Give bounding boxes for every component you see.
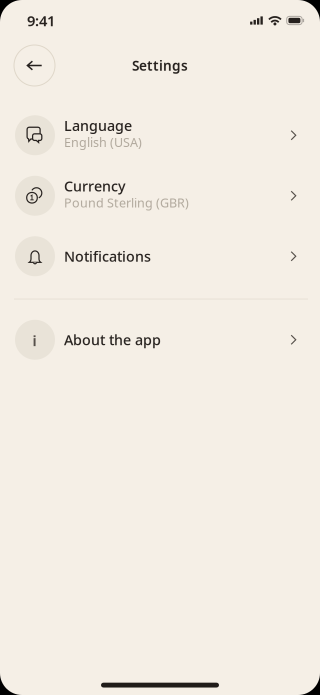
staticText: Language xyxy=(64,116,132,135)
staticText: 9:41 xyxy=(27,11,55,30)
staticText: About the app xyxy=(64,330,161,349)
button[interactable]: Back xyxy=(14,45,55,86)
button[interactable]: Language xyxy=(0,105,320,165)
button[interactable]: Notifications xyxy=(0,226,320,286)
staticText: Settings xyxy=(132,56,188,75)
button[interactable]: About the app xyxy=(0,309,320,370)
button[interactable]: Currency xyxy=(0,165,320,226)
staticText: Pound Sterling (GBR) xyxy=(64,194,189,211)
staticText: Currency xyxy=(64,176,126,195)
staticText: Notifications xyxy=(64,247,151,266)
staticText: English (USA) xyxy=(64,134,142,150)
